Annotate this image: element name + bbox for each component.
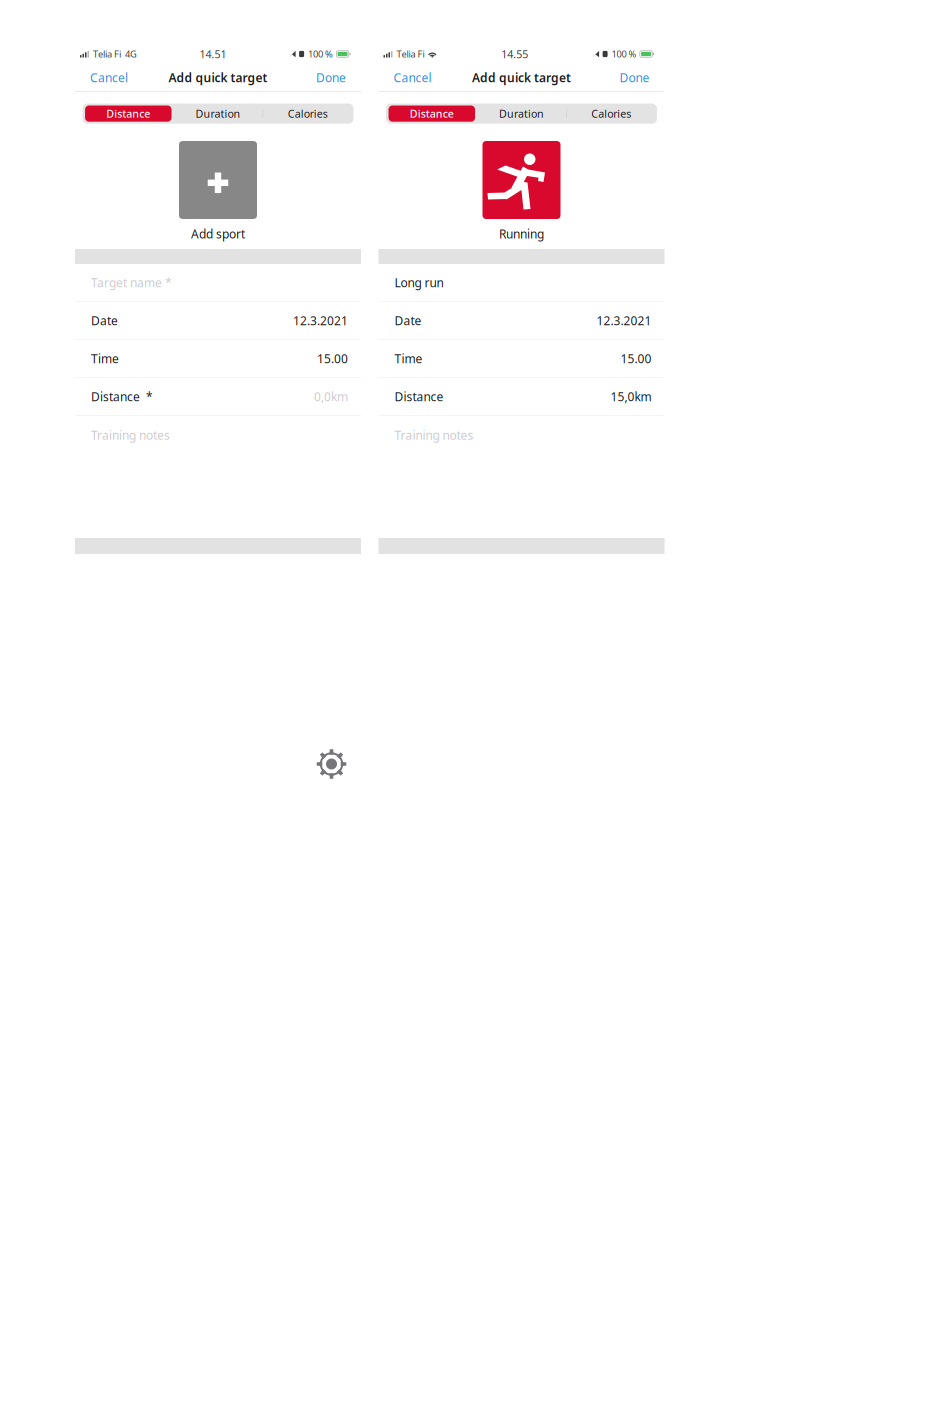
button[interactable]: Time xyxy=(75,340,361,378)
staticText: Cancel xyxy=(90,69,128,85)
staticText: Done xyxy=(316,69,346,85)
staticText: Add quick target xyxy=(472,69,571,85)
staticText: Telia Fi xyxy=(396,48,424,60)
staticText: Done xyxy=(619,69,649,85)
staticText: Distance xyxy=(410,106,454,121)
button[interactable]: Distance xyxy=(84,105,173,122)
staticText: Distance xyxy=(106,106,150,121)
staticText: Target name * xyxy=(91,275,172,291)
button[interactable] xyxy=(482,141,560,219)
button[interactable]: Calories xyxy=(567,105,656,122)
button[interactable]: Time xyxy=(378,340,664,378)
button[interactable]: Cancel xyxy=(75,63,143,92)
staticText: Training notes xyxy=(394,427,473,443)
staticText: 100 % xyxy=(612,48,637,60)
staticText: Distance * xyxy=(91,389,153,405)
button[interactable] xyxy=(179,141,257,219)
button[interactable]: Date xyxy=(378,302,664,340)
staticText: Calories xyxy=(288,106,328,121)
staticText: Duration xyxy=(195,106,240,121)
staticText: 15.00 xyxy=(620,351,651,367)
button[interactable]: Duration xyxy=(173,105,262,122)
staticText: 14.51 xyxy=(200,47,227,61)
button[interactable]: Training notes xyxy=(75,416,361,454)
button[interactable]: Long run xyxy=(378,264,664,302)
button[interactable]: Done xyxy=(301,63,361,92)
staticText: Running xyxy=(499,226,544,242)
button[interactable]: Distance xyxy=(387,105,476,122)
staticText: Long run xyxy=(394,275,443,291)
staticText: Training notes xyxy=(91,427,170,443)
button[interactable]: Distance xyxy=(378,378,664,416)
staticText: Date xyxy=(394,313,421,329)
button[interactable]: Training notes xyxy=(378,416,664,454)
staticText: Add quick target xyxy=(168,69,267,85)
staticText: 12.3.2021 xyxy=(293,313,348,329)
button[interactable]: Cancel xyxy=(378,63,446,92)
staticText: Date xyxy=(91,313,118,329)
staticText: Telia Fi 4G xyxy=(93,48,137,60)
staticText: Time xyxy=(91,351,119,367)
staticText: 14.55 xyxy=(501,47,528,61)
staticText: Distance xyxy=(394,389,443,405)
staticText: Time xyxy=(394,351,422,367)
button[interactable]: Done xyxy=(604,63,664,92)
staticText: Cancel xyxy=(393,69,431,85)
staticText: Duration xyxy=(499,106,544,121)
button[interactable]: Duration xyxy=(477,105,566,122)
button[interactable]: Distance * xyxy=(75,378,361,416)
staticText: 0,0km xyxy=(314,389,348,405)
staticText: 100 % xyxy=(308,48,333,60)
button[interactable]: Date xyxy=(75,302,361,340)
staticText: 12.3.2021 xyxy=(596,313,651,329)
staticText: Calories xyxy=(591,106,631,121)
staticText: 15.00 xyxy=(317,351,348,367)
button[interactable]: Settings xyxy=(316,748,347,780)
button[interactable]: Target name * xyxy=(75,264,361,302)
staticText: 15,0km xyxy=(610,389,651,405)
staticText: Add sport xyxy=(191,226,245,242)
button[interactable]: Calories xyxy=(263,105,352,122)
